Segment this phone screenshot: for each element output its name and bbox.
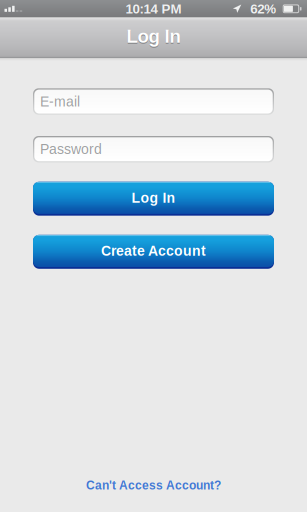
staticText: E-mail <box>40 94 80 109</box>
staticText: Can't Access Account? <box>86 479 221 492</box>
staticText: Log In <box>126 27 180 48</box>
button[interactable]: Can't Access Account? <box>80 473 227 498</box>
staticText: 62% <box>250 1 276 16</box>
staticText: Password <box>40 141 102 157</box>
button[interactable]: Log In <box>33 182 274 216</box>
staticText: 10:14 PM <box>125 1 181 16</box>
staticText: Log In <box>131 190 175 206</box>
staticText: Create Account <box>101 243 206 259</box>
staticText: Log In <box>126 26 180 47</box>
button[interactable]: Create Account <box>33 235 274 269</box>
